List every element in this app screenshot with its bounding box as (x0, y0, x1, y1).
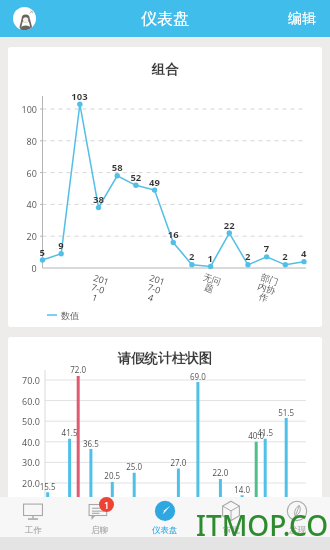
staticText: 编辑 (288, 10, 316, 28)
button[interactable]: 1 (66, 497, 132, 537)
staticText: 审批 (223, 525, 240, 536)
button[interactable]: 审批 (198, 497, 264, 537)
staticText: 仪表盘 (152, 525, 178, 536)
staticText: 1 (104, 499, 110, 511)
staticText: 工作 (25, 525, 42, 536)
staticText: 启聊 (91, 525, 108, 536)
button[interactable]: Profile (13, 7, 36, 30)
staticText: 仪表盘 (141, 9, 189, 29)
staticText: 发现 (289, 525, 306, 536)
button[interactable]: 发现 (264, 497, 330, 537)
button[interactable]: 工作 (0, 497, 66, 537)
button[interactable]: 编辑 (276, 4, 330, 34)
button[interactable]: 仪表盘 (132, 497, 198, 537)
